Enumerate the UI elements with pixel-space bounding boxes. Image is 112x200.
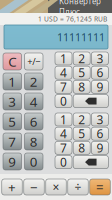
button[interactable]: 8 <box>73 80 90 93</box>
staticText: 6 <box>96 126 103 142</box>
button[interactable]: ÷ <box>68 179 88 195</box>
button[interactable]: 7 <box>55 80 72 93</box>
staticText: C <box>8 53 16 70</box>
staticText: 7 <box>60 79 67 95</box>
staticText: 9 <box>96 140 103 156</box>
button[interactable]: 0 <box>55 95 72 108</box>
button[interactable]: × <box>46 179 66 195</box>
staticText: 3 <box>96 111 103 127</box>
staticText: 11111111 <box>57 30 105 44</box>
button[interactable]: 4 <box>55 127 72 140</box>
button[interactable]: +/− <box>24 53 43 70</box>
button[interactable]: C <box>3 53 21 70</box>
staticText: 9 <box>96 79 103 95</box>
button[interactable]: 2 <box>73 113 90 126</box>
button[interactable]: 7 <box>55 141 72 154</box>
button[interactable]: 7 <box>3 133 21 150</box>
button[interactable]: 3 <box>91 113 108 126</box>
staticText: 1 <box>60 50 67 66</box>
staticText: 5 <box>78 65 85 81</box>
button[interactable]: 0 <box>55 156 72 169</box>
button[interactable]: 8 <box>73 141 90 154</box>
staticText: 5 <box>78 126 85 142</box>
button[interactable]: 8 <box>24 133 43 150</box>
button[interactable]: 4 <box>55 66 72 79</box>
button[interactable]: 3 <box>91 52 108 65</box>
button[interactable]: 0 <box>24 153 43 170</box>
staticText: 4 <box>60 126 67 142</box>
staticText: 3 <box>8 93 16 110</box>
button[interactable]: 9 <box>3 153 21 170</box>
button[interactable]: 9 <box>91 141 108 154</box>
button[interactable]: 2 <box>73 52 90 65</box>
staticText: − <box>30 178 38 196</box>
button[interactable]: 1 <box>55 113 72 126</box>
button[interactable]: 9 <box>91 80 108 93</box>
staticText: 4 <box>30 93 38 110</box>
button[interactable]: 6 <box>24 113 43 130</box>
button[interactable]: 4 <box>24 93 43 110</box>
staticText: 0 <box>60 154 67 170</box>
button[interactable]: = <box>90 179 110 195</box>
button[interactable]: 1 <box>55 52 72 65</box>
button[interactable]: Backspace <box>73 95 108 108</box>
button[interactable]: − <box>24 179 44 195</box>
staticText: = <box>96 178 104 196</box>
staticText: 0 <box>30 153 38 170</box>
staticText: 8 <box>78 140 85 156</box>
staticText: 7 <box>8 133 16 150</box>
staticText: Конвертер Плюс <box>59 0 101 17</box>
staticText: × <box>52 179 59 195</box>
button[interactable]: 3 <box>3 93 21 110</box>
staticText: 2 <box>78 50 85 66</box>
staticText: 1 <box>60 111 67 127</box>
staticText: 0 <box>60 93 67 109</box>
staticText: 2 <box>78 111 85 127</box>
staticText: 1 USD = 76,1245 RUB <box>38 15 107 23</box>
staticText: 6 <box>30 113 38 130</box>
button[interactable]: Backspace <box>73 156 108 169</box>
staticText: 5 <box>8 113 16 130</box>
staticText: ÷ <box>74 179 81 195</box>
staticText: 3 <box>96 50 103 66</box>
button[interactable]: + <box>2 179 22 195</box>
button[interactable]: 1 <box>3 73 21 90</box>
button[interactable]: 6 <box>91 66 108 79</box>
staticText: + <box>8 178 16 196</box>
button[interactable]: 5 <box>73 127 90 140</box>
staticText: 7 <box>60 140 67 156</box>
staticText: 4 <box>60 65 67 81</box>
staticText: 8 <box>78 79 85 95</box>
staticText: 1 <box>8 73 16 90</box>
button[interactable]: 5 <box>3 113 21 130</box>
button[interactable]: 5 <box>73 66 90 79</box>
button[interactable]: 2 <box>24 73 43 90</box>
staticText: 2 <box>30 73 38 90</box>
staticText: 9 <box>8 153 16 170</box>
staticText: 8 <box>30 133 38 150</box>
staticText: 6 <box>96 65 103 81</box>
button[interactable]: 6 <box>91 127 108 140</box>
staticText: +/− <box>27 55 40 68</box>
